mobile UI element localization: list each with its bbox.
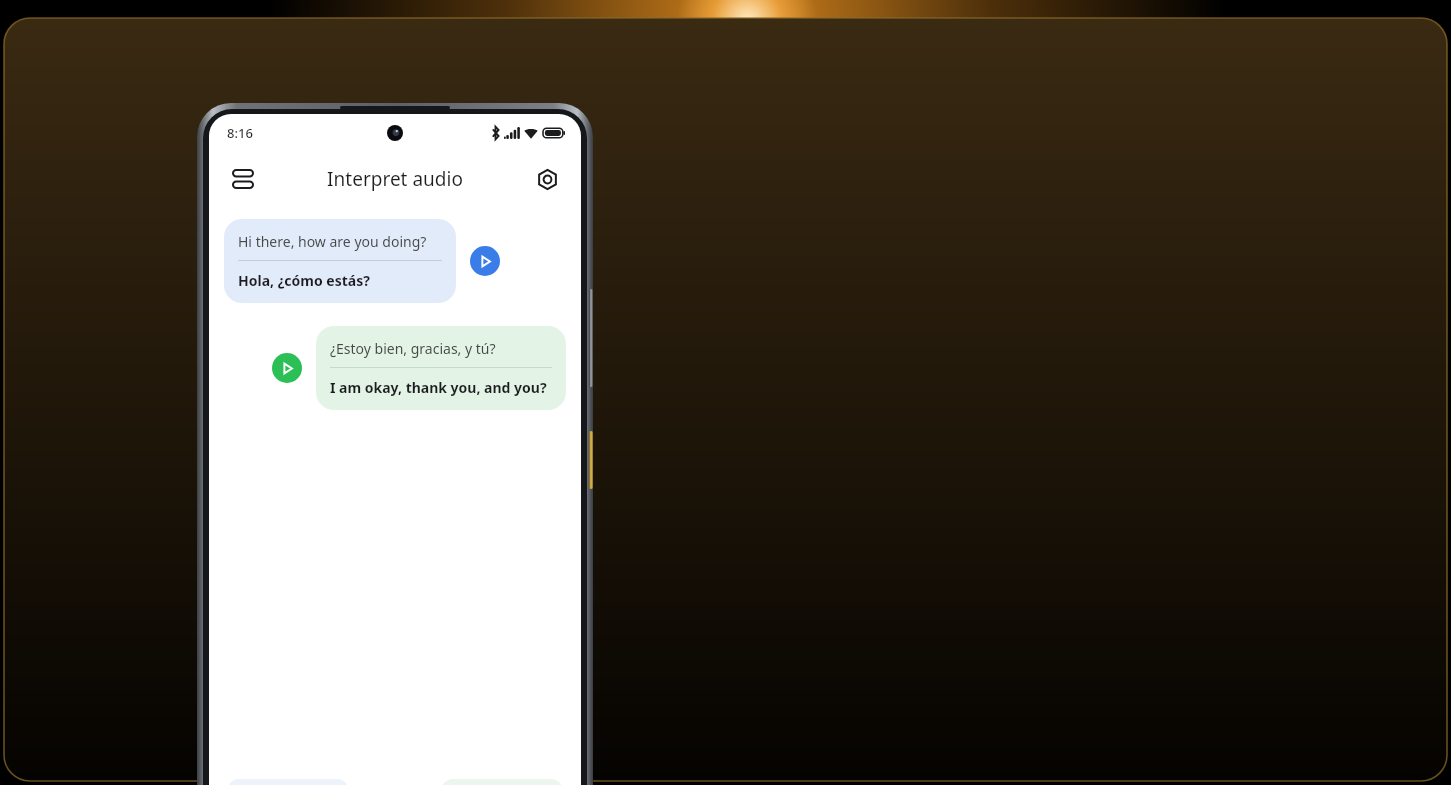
button[interactable]: Spanish — [441, 779, 563, 785]
staticText: Hi there, how are you doing? — [238, 232, 427, 251]
staticText: Hola, ¿cómo estás? — [238, 271, 370, 290]
button[interactable]: Conversation mode — [223, 159, 263, 199]
button[interactable]: Play Spanish audio — [272, 353, 302, 383]
button[interactable]: English — [227, 779, 349, 785]
staticText: 8:16 — [227, 124, 253, 142]
staticText: Interpret audio — [327, 166, 463, 192]
button[interactable]: Play English audio — [470, 246, 500, 276]
button[interactable]: Hi there, how are you doing? — [224, 219, 456, 303]
button[interactable]: ¿Estoy bien, gracias, y tú? — [316, 326, 566, 410]
staticText: ¿Estoy bien, gracias, y tú? — [330, 339, 496, 358]
button[interactable]: Settings — [527, 159, 567, 199]
staticText: I am okay, thank you, and you? — [330, 378, 547, 397]
